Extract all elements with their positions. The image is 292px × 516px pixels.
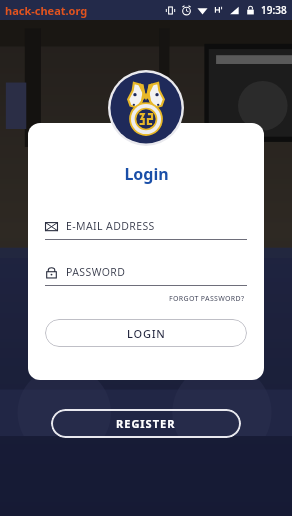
- staticText: hack-cheat.org: [5, 3, 88, 18]
- button[interactable]: PASSWORD: [45, 265, 247, 286]
- button[interactable]: REGISTER: [51, 409, 241, 438]
- staticText: REGISTER: [116, 416, 176, 431]
- staticText: Login: [124, 163, 169, 185]
- staticText: FORGOT PASSWORD?: [169, 294, 245, 304]
- staticText: 19:38: [261, 3, 287, 17]
- button[interactable]: E-MAIL ADDRESS: [45, 219, 247, 240]
- button[interactable]: FORGOT PASSWORD?: [167, 292, 247, 306]
- staticText: PASSWORD: [66, 265, 126, 279]
- staticText: LOGIN: [127, 326, 166, 341]
- button[interactable]: LOGIN: [45, 319, 247, 347]
- staticText: E-MAIL ADDRESS: [66, 219, 155, 233]
